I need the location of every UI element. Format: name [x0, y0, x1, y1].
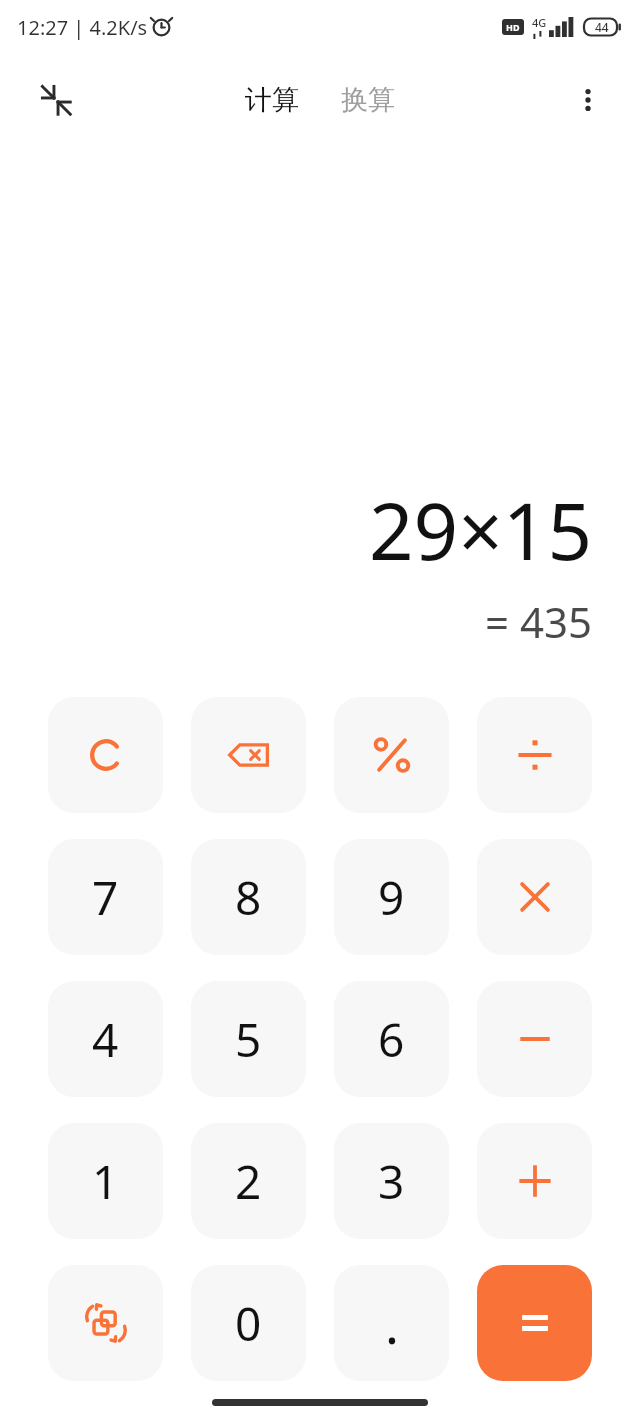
staticText: 44: [595, 19, 609, 35]
button[interactable]: Collapse: [28, 72, 84, 128]
button[interactable]: 4: [48, 981, 163, 1097]
button[interactable]: Convert: [48, 1265, 163, 1381]
staticText: .: [385, 1288, 399, 1359]
button[interactable]: 换算: [333, 77, 403, 123]
staticText: 8: [235, 866, 262, 929]
staticText: 4G: [532, 15, 547, 30]
staticText: 7: [92, 866, 119, 929]
staticText: 5: [235, 1008, 262, 1071]
staticText: 4: [92, 1008, 119, 1071]
staticText: 1: [92, 1150, 119, 1213]
staticText: 3: [378, 1150, 405, 1213]
button[interactable]: Plus: [477, 1123, 592, 1239]
button[interactable]: 0: [191, 1265, 306, 1381]
button[interactable]: More options: [562, 74, 614, 126]
button[interactable]: 8: [191, 839, 306, 955]
button[interactable]: 9: [334, 839, 449, 955]
button[interactable]: 计算: [237, 77, 307, 123]
staticText: 计算: [245, 83, 299, 117]
button[interactable]: Equals: [477, 1265, 592, 1381]
staticText: = 435: [484, 593, 592, 650]
staticText: HD: [506, 21, 520, 33]
button[interactable]: 2: [191, 1123, 306, 1239]
button[interactable]: Clear: [48, 697, 163, 813]
button[interactable]: Minus: [477, 981, 592, 1097]
staticText: 12:27 | 4.2K/s: [17, 14, 148, 41]
button[interactable]: Divide: [477, 697, 592, 813]
button[interactable]: Backspace: [191, 697, 306, 813]
button[interactable]: Multiply: [477, 839, 592, 955]
button[interactable]: 5: [191, 981, 306, 1097]
staticText: 换算: [341, 83, 395, 117]
button[interactable]: Percent: [334, 697, 449, 813]
staticText: 2: [235, 1150, 262, 1213]
button[interactable]: 1: [48, 1123, 163, 1239]
button[interactable]: 7: [48, 839, 163, 955]
button[interactable]: 3: [334, 1123, 449, 1239]
staticText: 9: [378, 866, 405, 929]
staticText: 6: [378, 1008, 405, 1071]
button[interactable]: .: [334, 1265, 449, 1381]
staticText: 0: [235, 1292, 262, 1355]
staticText: 29×15: [368, 477, 592, 583]
button[interactable]: 6: [334, 981, 449, 1097]
